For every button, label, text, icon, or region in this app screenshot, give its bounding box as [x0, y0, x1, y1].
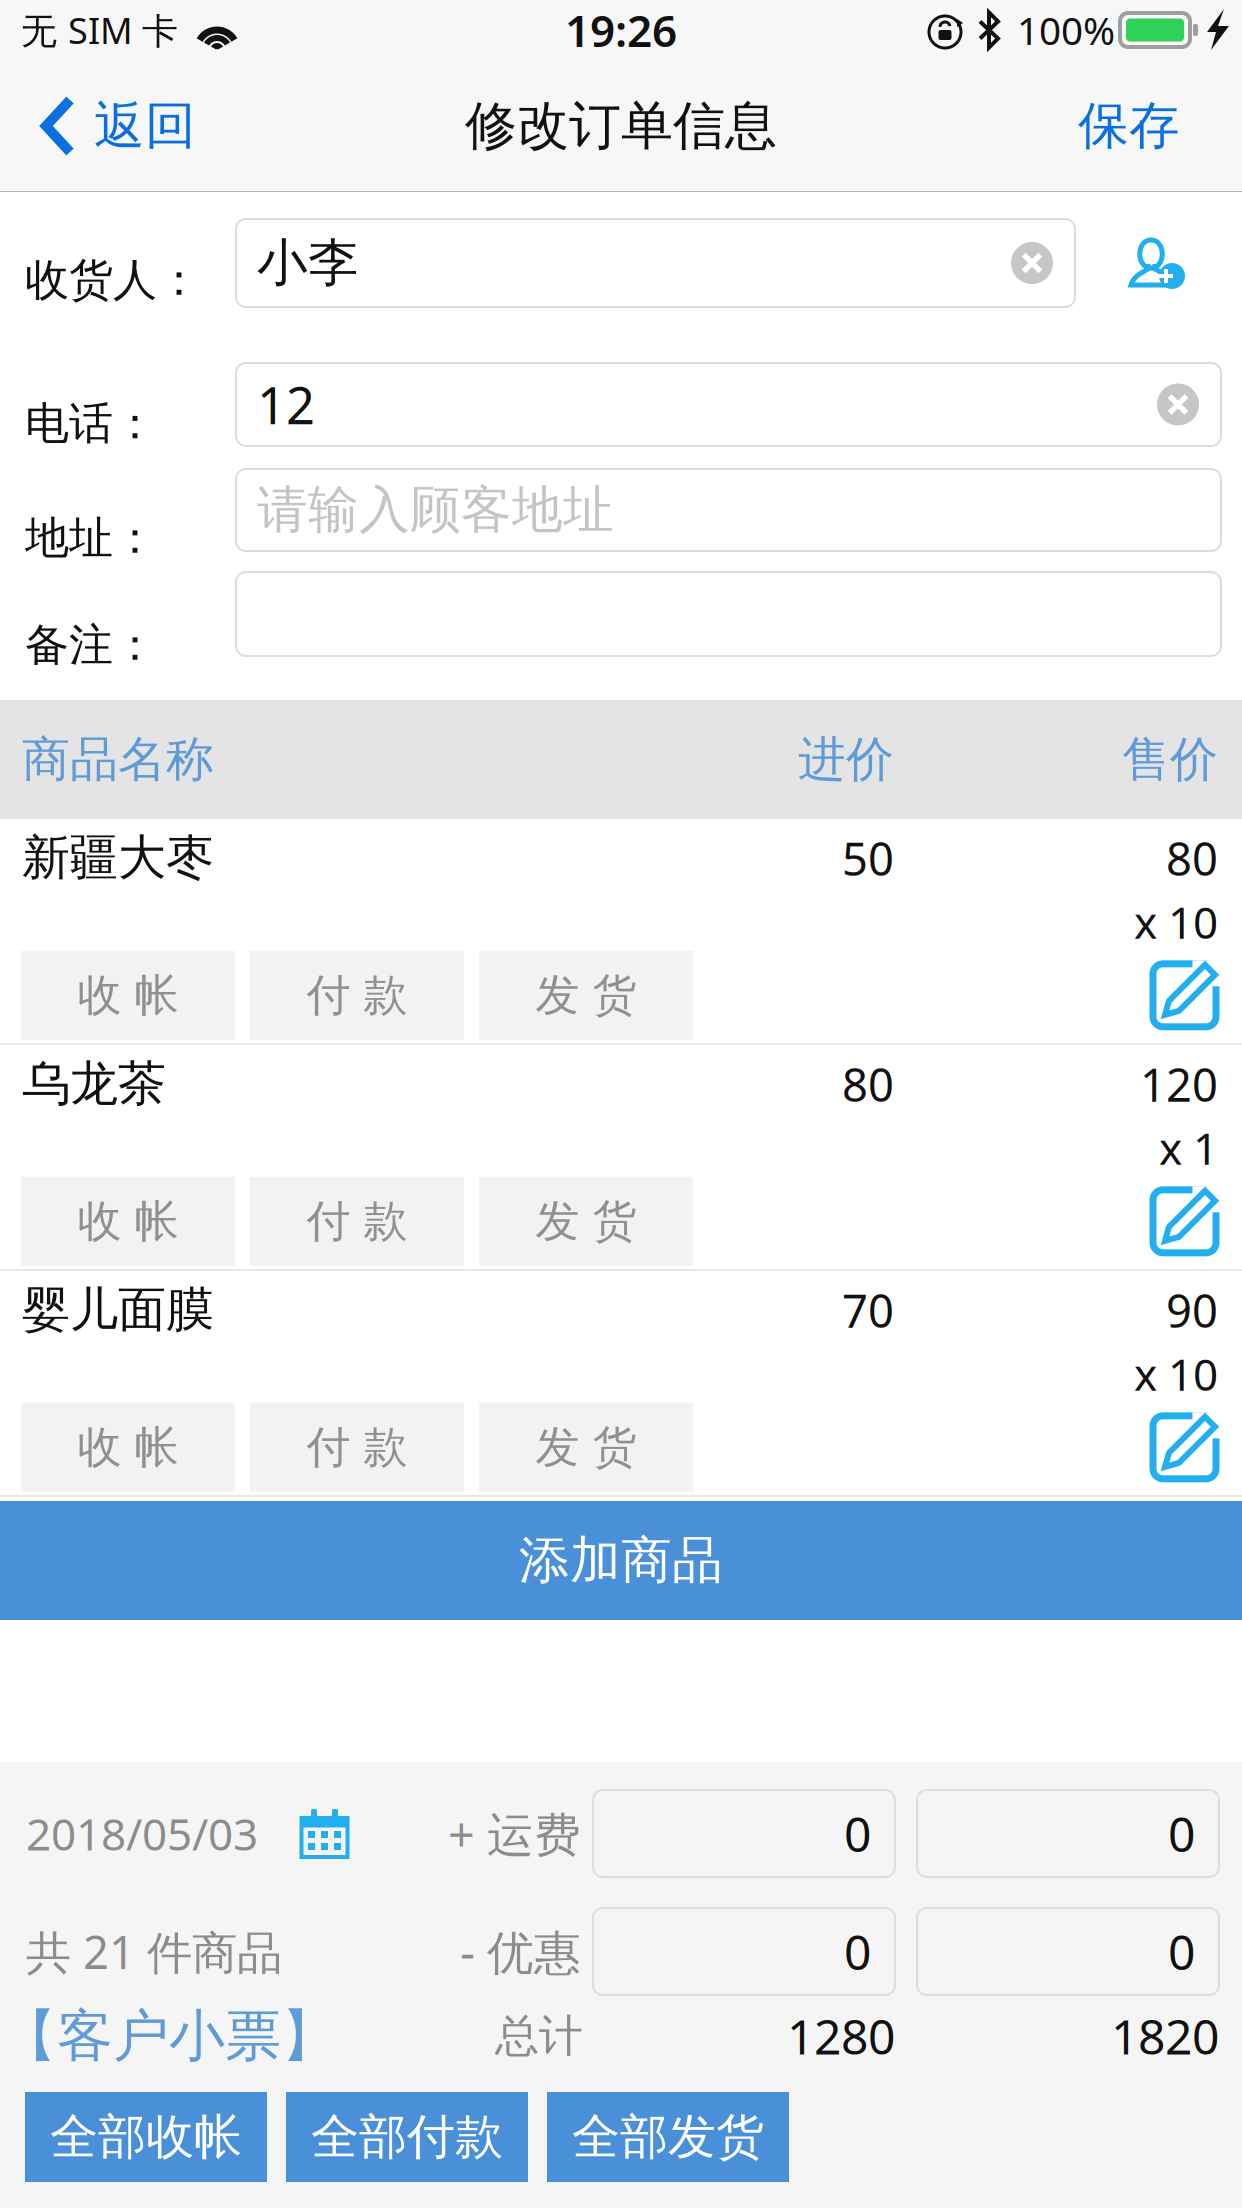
staticText: 0 — [1168, 1920, 1195, 1983]
staticText: 婴儿面膜 — [22, 1280, 214, 1339]
staticText: 80 — [1166, 828, 1218, 888]
staticText: 返回 — [94, 95, 196, 157]
staticText: 付 款 — [306, 1194, 407, 1248]
button[interactable]: 全部付款 — [286, 2092, 528, 2182]
button[interactable]: 添加联系人 — [1129, 237, 1185, 289]
button[interactable]: 选择日期 — [300, 1809, 349, 1857]
button[interactable]: 发 货 — [479, 951, 693, 1040]
staticText: 【客户小票】 — [1, 2002, 337, 2070]
staticText: x 10 — [1134, 892, 1218, 951]
staticText: 地址： — [25, 511, 157, 565]
staticText: 收 帐 — [77, 1194, 178, 1248]
staticText: 12 — [257, 371, 315, 438]
staticText: 全部付款 — [311, 2107, 503, 2166]
staticText: 100% — [1017, 4, 1115, 56]
staticText: 收 帐 — [77, 968, 178, 1022]
staticText: 0 — [844, 1920, 871, 1983]
staticText: 请输入顾客地址 — [257, 479, 614, 541]
staticText: 保存 — [1078, 95, 1180, 157]
staticText: 添加商品 — [519, 1529, 723, 1592]
staticText: 发 货 — [535, 1420, 636, 1474]
staticText: 小李 — [257, 232, 359, 294]
staticText: 0 — [1168, 1802, 1195, 1865]
button[interactable]: 保存 — [1048, 61, 1242, 191]
button[interactable]: 收 帐 — [21, 1177, 235, 1266]
staticText: 1280 — [787, 2004, 895, 2068]
button[interactable]: 付 款 — [250, 1177, 464, 1266]
staticText: 总计 — [495, 2009, 583, 2063]
button[interactable]: 【客户小票】 — [0, 2002, 337, 2070]
button[interactable]: 发 货 — [479, 1403, 693, 1492]
staticText: 进价 — [798, 730, 894, 789]
staticText: 80 — [842, 1054, 894, 1114]
staticText: 商品名称 — [22, 730, 214, 789]
staticText: 无 SIM 卡 — [21, 6, 178, 54]
button[interactable]: 返回 — [0, 61, 212, 191]
staticText: 发 货 — [535, 1194, 636, 1248]
staticText: x 10 — [1134, 1344, 1218, 1403]
staticText: 售价 — [1122, 730, 1218, 789]
staticText: 付 款 — [306, 1420, 407, 1474]
staticText: 全部收帐 — [50, 2107, 242, 2166]
staticText: 共 21 件商品 — [26, 1921, 282, 1982]
staticText: + 运费 — [448, 1802, 581, 1864]
staticText: 乌龙茶 — [22, 1054, 166, 1113]
staticText: 50 — [842, 828, 894, 888]
staticText: 新疆大枣 — [22, 828, 214, 887]
staticText: 电话： — [25, 396, 157, 450]
button[interactable]: 付 款 — [250, 951, 464, 1040]
staticText: 90 — [1166, 1280, 1218, 1340]
staticText: x 1 — [1159, 1118, 1218, 1177]
button[interactable]: 付 款 — [250, 1403, 464, 1492]
staticText: - 优惠 — [460, 1920, 581, 1982]
button[interactable]: 添加商品 — [0, 1501, 1242, 1620]
staticText: 1820 — [1111, 2004, 1219, 2068]
staticText: 收货人： — [25, 253, 201, 307]
staticText: 120 — [1140, 1054, 1218, 1114]
staticText: 修改订单信息 — [465, 94, 777, 158]
staticText: 全部发货 — [572, 2107, 764, 2166]
staticText: 收 帐 — [77, 1420, 178, 1474]
staticText: 付 款 — [306, 968, 407, 1022]
button[interactable]: 编辑 — [1151, 1188, 1218, 1255]
button[interactable]: 全部收帐 — [25, 2092, 267, 2182]
button[interactable]: 编辑 — [1151, 1414, 1218, 1481]
staticText: 备注： — [25, 618, 157, 672]
staticText: 发 货 — [535, 968, 636, 1022]
staticText: 70 — [842, 1280, 894, 1340]
button[interactable]: 发 货 — [479, 1177, 693, 1266]
staticText: 0 — [844, 1802, 871, 1865]
staticText: 19:26 — [565, 1, 677, 59]
button[interactable]: 收 帐 — [21, 1403, 235, 1492]
button[interactable]: 收 帐 — [21, 951, 235, 1040]
button[interactable]: 编辑 — [1151, 962, 1218, 1029]
button[interactable]: 全部发货 — [547, 2092, 789, 2182]
staticText: 2018/05/03 — [26, 1804, 258, 1863]
